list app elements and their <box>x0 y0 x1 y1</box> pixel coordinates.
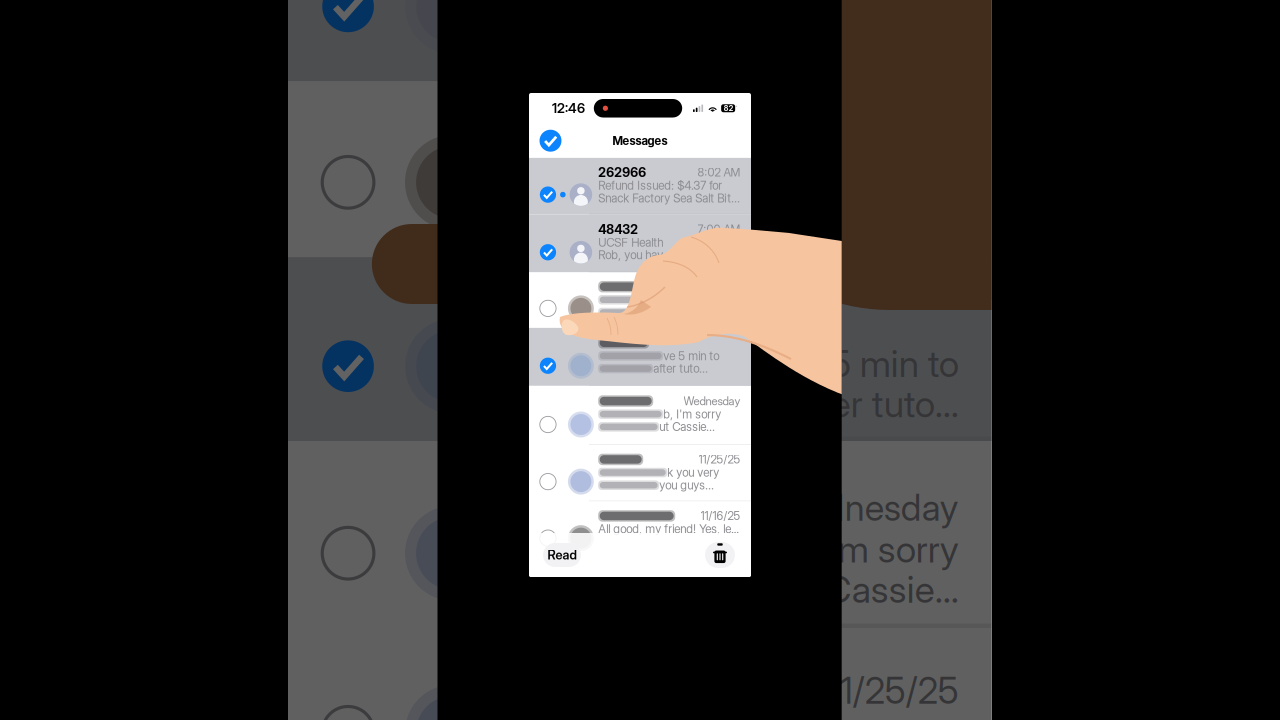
staticText: ut Cassie... <box>784 567 959 612</box>
staticText: Messages <box>612 134 667 148</box>
staticText: 11/16/25 <box>701 509 741 523</box>
staticText: Rob, you hav <box>598 248 663 262</box>
staticText: b, I'm sorry <box>782 526 959 571</box>
button[interactable]: Wednesday <box>529 386 751 445</box>
staticText: Read <box>547 547 576 563</box>
button[interactable] <box>529 272 751 328</box>
staticText: after tuto... <box>653 361 708 376</box>
staticText: UCSF Health <box>598 235 663 249</box>
staticText: 11/25/25 <box>699 452 741 466</box>
staticText: you guys... <box>659 478 714 492</box>
staticText: Wednesday <box>684 394 741 408</box>
staticText: ut Cassie... <box>659 420 715 434</box>
staticText: Wednesday <box>772 485 959 529</box>
staticText: k you very <box>795 709 959 720</box>
staticText: 8:02 AM <box>698 165 741 179</box>
button[interactable]: 11/25/25 <box>529 445 751 501</box>
staticText: after tuto... <box>791 381 959 426</box>
button[interactable]: 48432 <box>529 214 751 272</box>
staticText: Refund Issued: $4.37 for <box>598 178 722 193</box>
staticText: ve 5 min to <box>783 341 959 386</box>
button[interactable] <box>529 328 751 386</box>
staticText: b, I'm sorry <box>663 407 721 421</box>
staticText: k you very <box>667 465 719 480</box>
staticText: 12:46 <box>552 100 585 116</box>
staticText: ve 5 min to <box>663 349 719 363</box>
button[interactable]: Deselect all <box>529 125 567 157</box>
staticText: 7:00 AM <box>698 222 741 236</box>
staticText: 262966 <box>598 165 646 180</box>
button[interactable]: Read <box>543 543 581 567</box>
staticText: 48432 <box>598 222 638 237</box>
button[interactable]: 262966 <box>529 158 751 214</box>
staticText: Snack Factory Sea Salt Bit... <box>598 191 740 205</box>
button[interactable]: Delete <box>705 542 735 568</box>
staticText: 82 <box>724 104 733 113</box>
button[interactable]: 11/16/25 <box>529 501 751 558</box>
staticText: 11/25/25 <box>827 668 959 712</box>
staticText: All good, my friend! Yes, let's <box>598 522 741 536</box>
